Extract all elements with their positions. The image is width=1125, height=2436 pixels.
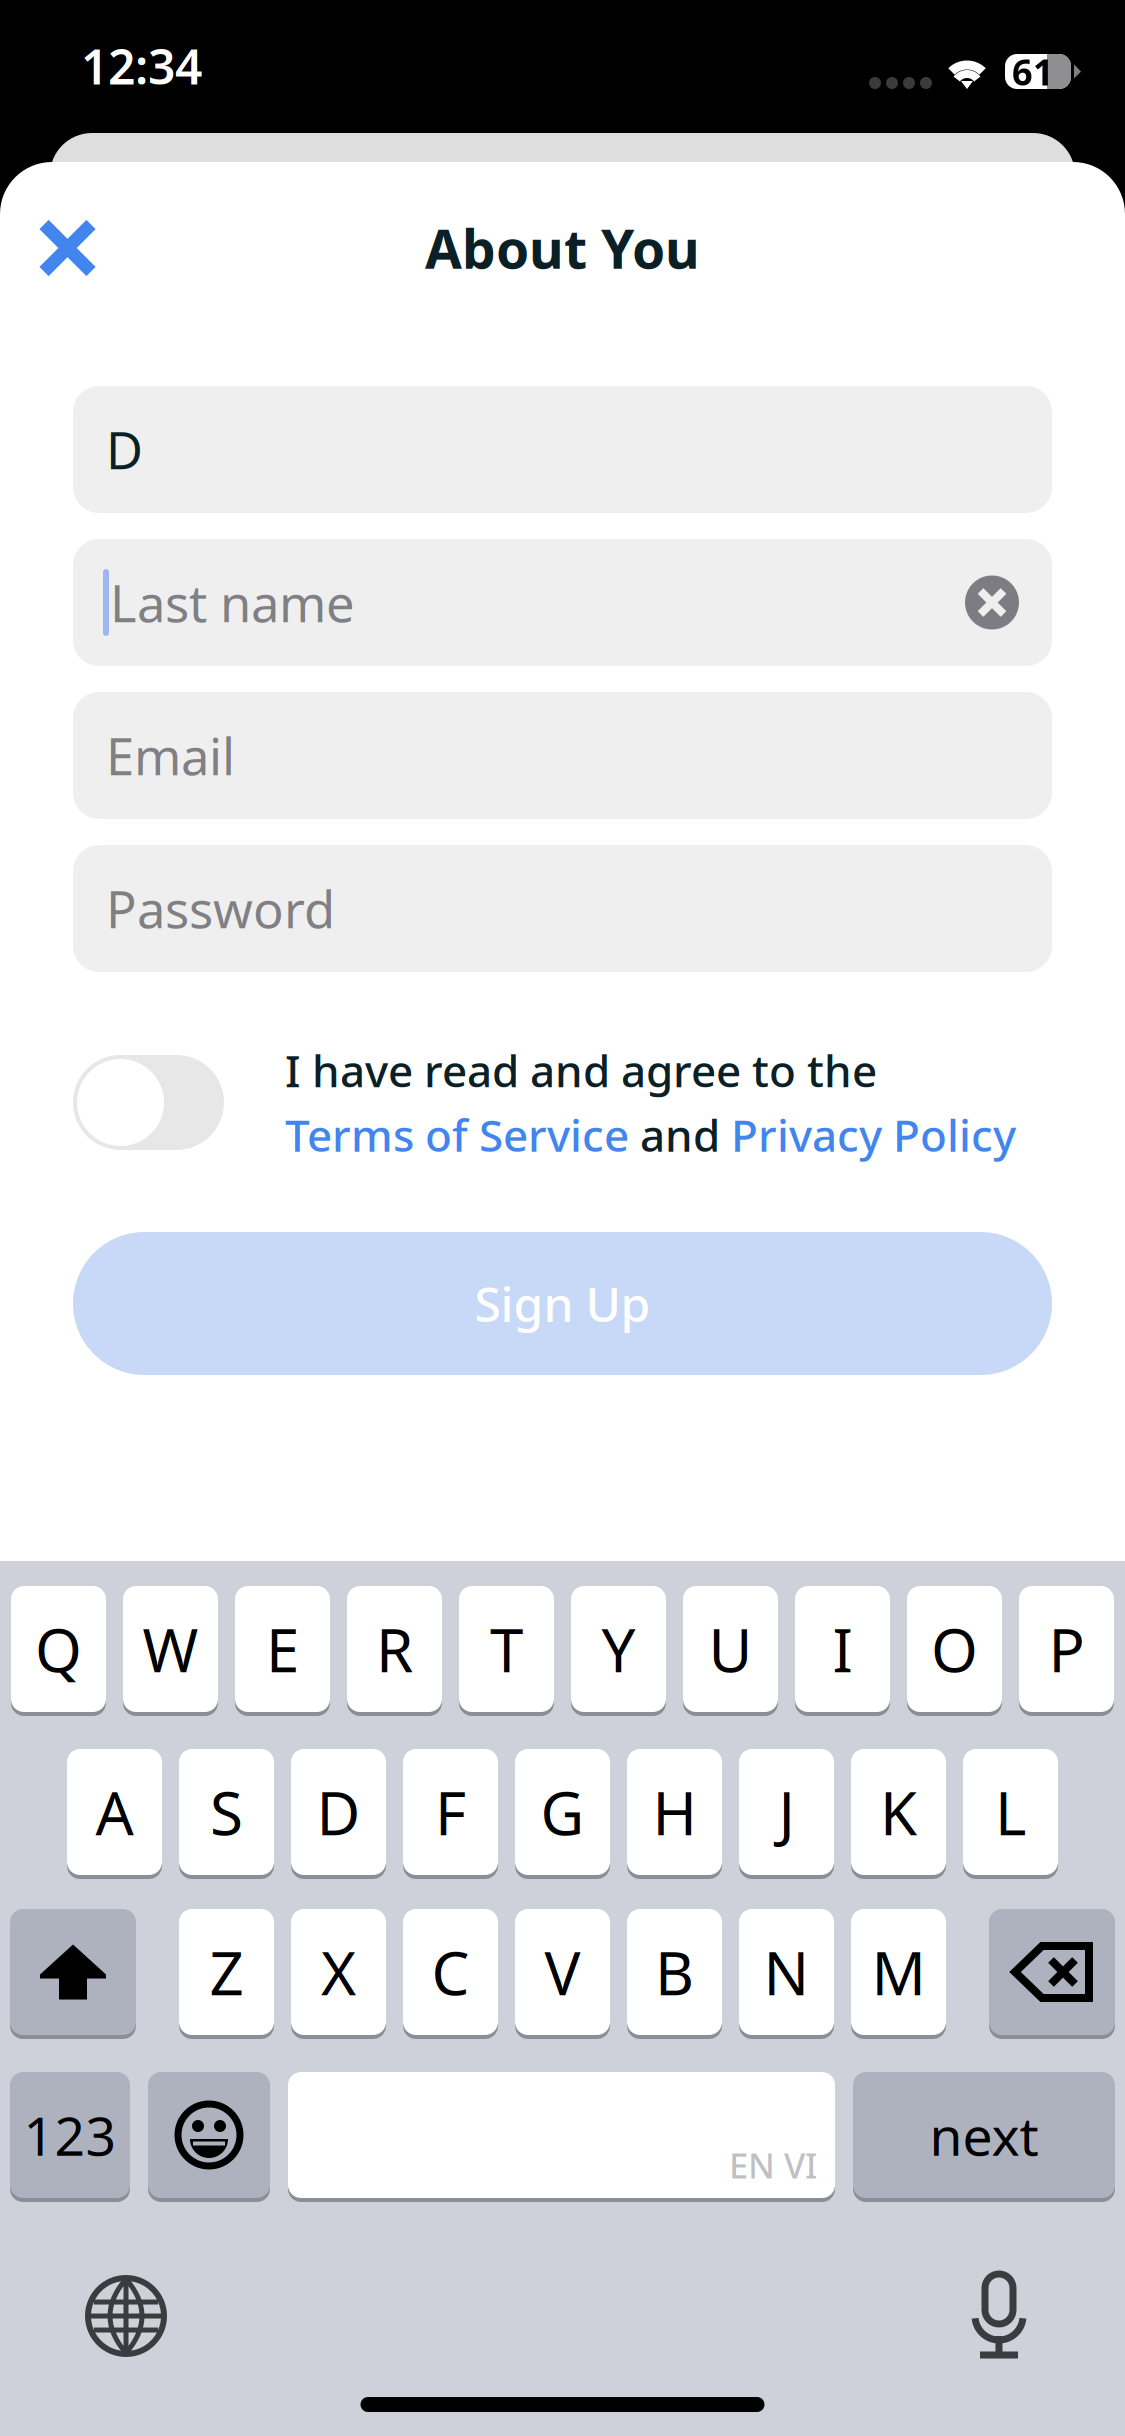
staticText: H [652, 1772, 696, 1852]
button[interactable]: I [795, 1584, 890, 1714]
staticText: I have read and agree to the [285, 1041, 877, 1099]
button[interactable]: E [235, 1584, 330, 1714]
staticText: A [95, 1772, 133, 1852]
staticText: Z [209, 1932, 243, 2012]
staticText: F [435, 1772, 466, 1852]
staticText: I [832, 1609, 852, 1689]
staticText: 123 [23, 2100, 116, 2170]
button[interactable]: S [179, 1747, 274, 1877]
staticText: 61 [1012, 48, 1054, 95]
staticText: V [544, 1932, 580, 2012]
button[interactable]: D [291, 1747, 386, 1877]
button[interactable]: next [853, 2070, 1115, 2200]
button[interactable]: Clear text [948, 558, 1036, 646]
button[interactable]: Emoji [148, 2070, 270, 2200]
staticText: K [880, 1772, 917, 1852]
staticText: C [431, 1932, 469, 2012]
staticText: B [655, 1932, 694, 2012]
staticText: About You [425, 213, 700, 283]
staticText: J [778, 1772, 794, 1852]
button[interactable]: W [123, 1584, 218, 1714]
staticText: S [210, 1772, 243, 1852]
button[interactable]: U [683, 1584, 778, 1714]
staticText: X [321, 1932, 356, 2012]
staticText: Y [601, 1609, 635, 1689]
staticText: R [376, 1609, 413, 1689]
button[interactable]: Y [571, 1584, 666, 1714]
button[interactable]: V [515, 1907, 610, 2037]
button[interactable]: B [627, 1907, 722, 2037]
staticText: 12:34 [81, 34, 202, 98]
button[interactable]: P [1019, 1584, 1114, 1714]
staticText: Sign Up [474, 1272, 650, 1335]
staticText: Terms of Service [285, 1105, 629, 1164]
button[interactable]: Sign Up [73, 1232, 1052, 1375]
staticText: L [995, 1772, 1026, 1852]
staticText: D [316, 1772, 360, 1852]
button[interactable]: Terms of Service [285, 1105, 629, 1164]
button[interactable]: M [851, 1907, 946, 2037]
button[interactable]: Q [11, 1584, 106, 1714]
staticText: E [266, 1609, 299, 1689]
staticText: Privacy Policy [731, 1105, 1016, 1164]
staticText: W [142, 1609, 198, 1689]
staticText: G [540, 1772, 584, 1852]
button[interactable]: Delete [989, 1907, 1115, 2037]
button[interactable]: J [739, 1747, 834, 1877]
button[interactable]: T [459, 1584, 554, 1714]
staticText: Email [106, 722, 235, 789]
button[interactable]: F [403, 1747, 498, 1877]
button[interactable]: L [963, 1747, 1058, 1877]
button[interactable]: O [907, 1584, 1002, 1714]
button[interactable]: Z [179, 1907, 274, 2037]
staticText: P [1048, 1609, 1084, 1689]
staticText: T [490, 1609, 523, 1689]
staticText: M [871, 1932, 925, 2012]
button[interactable]: Space [288, 2070, 835, 2200]
staticText: U [708, 1609, 752, 1689]
staticText: next [929, 2100, 1038, 2170]
button[interactable]: R [347, 1584, 442, 1714]
button[interactable]: K [851, 1747, 946, 1877]
button[interactable]: Dictation [936, 2249, 1056, 2369]
staticText: D [106, 416, 143, 483]
staticText: and [629, 1105, 731, 1164]
button[interactable]: Privacy Policy [731, 1105, 1016, 1164]
staticText: Last name [110, 569, 355, 636]
staticText: Q [35, 1609, 82, 1689]
button[interactable]: Next keyboard [66, 2249, 186, 2369]
button[interactable]: X [291, 1907, 386, 2037]
staticText: EN VI [729, 2142, 817, 2188]
button[interactable]: I have read and agree to the Terms of Se… [73, 1055, 224, 1150]
staticText: Password [106, 875, 335, 942]
button[interactable]: C [403, 1907, 498, 2037]
button[interactable]: G [515, 1747, 610, 1877]
button[interactable]: Close [0, 194, 128, 301]
button[interactable]: Shift [10, 1907, 136, 2037]
button[interactable]: 123 [10, 2070, 130, 2200]
button[interactable]: A [67, 1747, 162, 1877]
staticText: N [763, 1932, 809, 2012]
button[interactable]: H [627, 1747, 722, 1877]
staticText: O [931, 1609, 978, 1689]
button[interactable]: N [739, 1907, 834, 2037]
